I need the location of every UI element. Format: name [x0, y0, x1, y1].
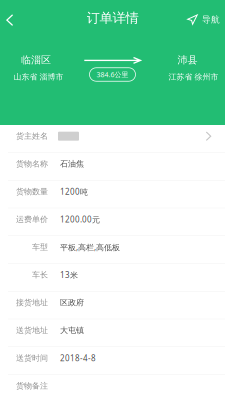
- staticText: 运费单价: [16, 214, 48, 224]
- button[interactable]: 接货地址: [0, 291, 225, 319]
- staticText: 石油焦: [60, 159, 84, 169]
- staticText: 货物备注: [16, 381, 48, 391]
- staticText: 384.6公里: [96, 70, 128, 79]
- staticText: 区政府: [60, 298, 84, 308]
- staticText: 2018-4-8: [60, 353, 96, 364]
- button[interactable]: 货物名称: [0, 153, 225, 181]
- staticText: 1200.00元: [60, 214, 100, 225]
- staticText: 导航: [202, 14, 220, 25]
- staticText: 车长: [32, 270, 48, 280]
- staticText: 车型: [32, 242, 48, 252]
- staticText: 货物名称: [16, 159, 48, 169]
- staticText: 13米: [60, 269, 78, 280]
- staticText: 平板,高栏,高低板: [60, 242, 120, 253]
- button[interactable]: 货主姓名: [0, 125, 225, 153]
- button[interactable]: 导航: [181, 5, 225, 35]
- staticText: 山东省 淄博市: [13, 72, 63, 82]
- button[interactable]: 货物数量: [0, 180, 225, 208]
- button[interactable]: 送货地址: [0, 319, 225, 347]
- staticText: 江苏省 徐州市: [168, 72, 218, 82]
- staticText: 沛县: [177, 54, 197, 66]
- staticText: 临淄区: [21, 54, 51, 66]
- button[interactable]: 货物备注: [0, 375, 225, 400]
- staticText: 大屯镇: [60, 325, 84, 335]
- button[interactable]: 车长: [0, 264, 225, 292]
- staticText: 订单详情: [86, 10, 138, 26]
- staticText: 送货时间: [16, 353, 48, 363]
- button[interactable]: 车型: [0, 236, 225, 264]
- button[interactable]: 送货时间: [0, 347, 225, 375]
- staticText: 1200吨: [60, 186, 88, 197]
- button[interactable]: Back: [0, 5, 23, 35]
- staticText: 货主姓名: [16, 131, 48, 141]
- button[interactable]: 运费单价: [0, 208, 225, 236]
- staticText: 接货地址: [16, 298, 48, 308]
- staticText: 送货地址: [16, 325, 48, 335]
- staticText: 货物数量: [16, 187, 48, 197]
